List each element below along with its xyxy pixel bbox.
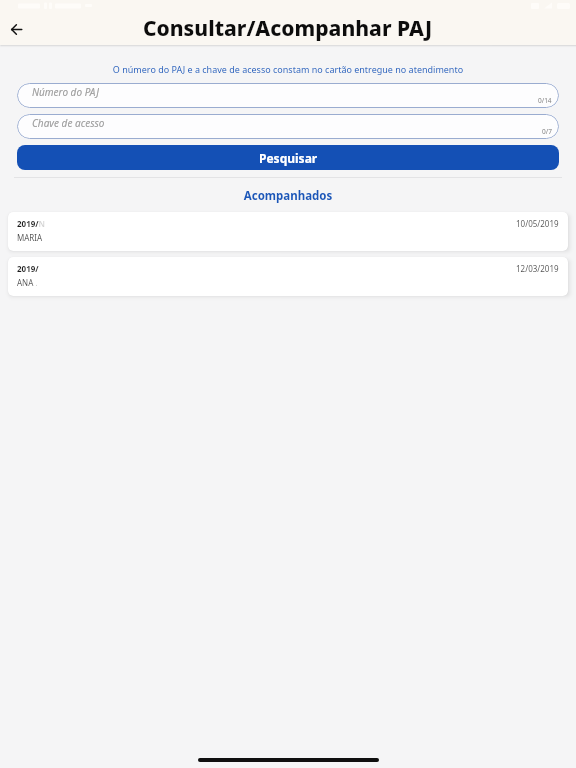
staticText: 2019/N xyxy=(17,218,46,229)
staticText: 0/7 xyxy=(542,127,552,136)
staticText: MARIA xyxy=(17,232,43,243)
staticText: Número do PAJ xyxy=(32,85,99,99)
staticText: Pesquisar xyxy=(259,150,318,166)
staticText: ANA . xyxy=(17,277,38,288)
button[interactable]: Número do PAJ xyxy=(17,83,559,108)
staticText: Acompanhados xyxy=(0,188,576,204)
staticText: 0/14 xyxy=(538,96,552,105)
staticText: Chave de acesso xyxy=(32,116,105,130)
button[interactable]: Chave de acesso xyxy=(17,114,559,139)
button[interactable]: Pesquisar xyxy=(17,145,559,170)
staticText: O número do PAJ e a chave de acesso cons… xyxy=(0,63,576,75)
button[interactable]: 2019/N xyxy=(8,212,568,251)
staticText: 2019/ xyxy=(17,263,39,274)
button[interactable]: Back xyxy=(3,16,29,42)
button[interactable]: 2019/ xyxy=(8,257,568,296)
staticText: 12/03/2019 xyxy=(516,263,559,274)
staticText: Consultar/Acompanhar PAJ xyxy=(143,14,433,43)
staticText: 10/05/2019 xyxy=(516,218,559,229)
